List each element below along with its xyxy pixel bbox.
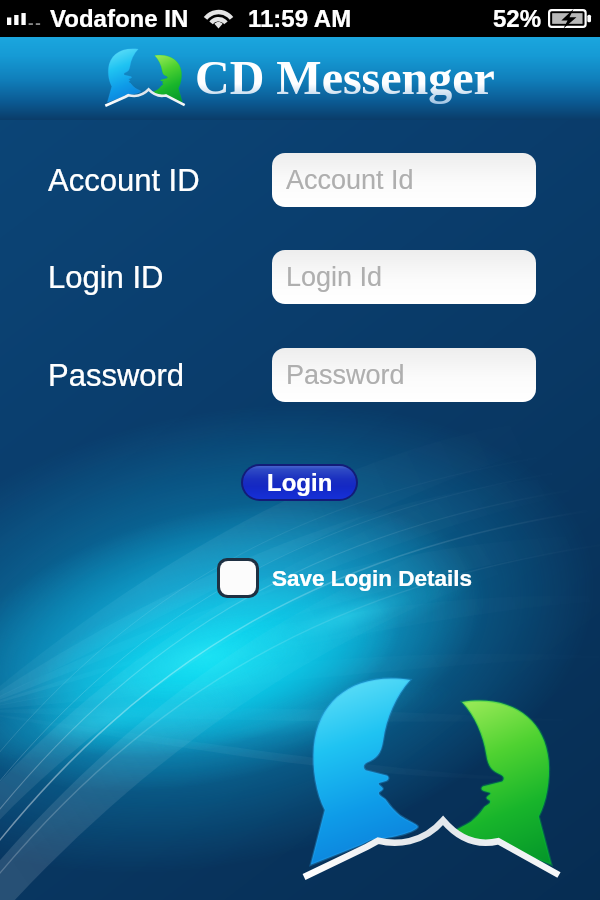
staticText: Login [267,469,333,496]
staticText: Password [286,360,405,390]
button[interactable]: Login Id [272,250,536,304]
staticText: Login Id [286,262,383,292]
button[interactable]: Account Id [272,153,536,207]
staticText: Login ID [48,260,164,295]
button[interactable]: Login [243,466,356,499]
button[interactable]: Save Login Details [217,558,473,598]
staticText: Password [48,358,185,393]
staticText: 11:59 AM [248,5,352,32]
staticText: Account Id [286,165,414,195]
button[interactable]: Password [272,348,536,402]
staticText: CD Messenger [195,51,495,104]
staticText: Save Login Details [272,566,473,591]
staticText: Account ID [48,163,200,198]
staticText: 52% [493,5,542,32]
staticText: Vodafone IN [50,5,189,32]
